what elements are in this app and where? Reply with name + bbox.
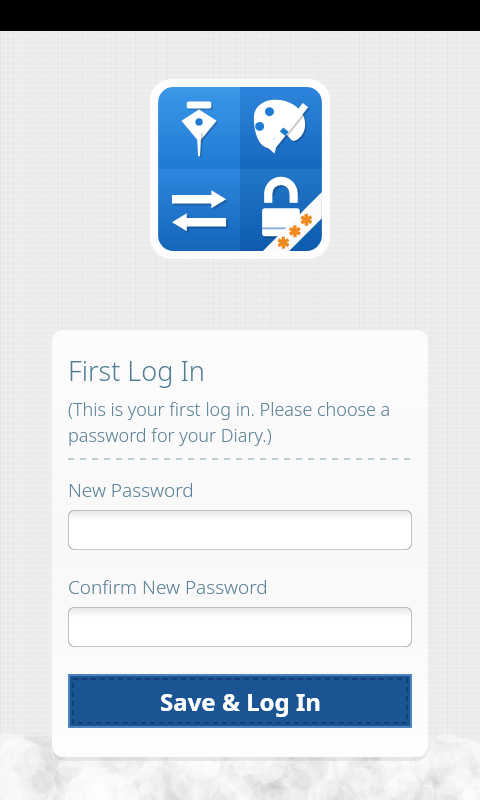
button[interactable] xyxy=(68,607,412,647)
staticText: (This is your first log in. Please choos… xyxy=(68,397,391,448)
staticText: First Log In xyxy=(68,352,205,389)
button[interactable]: Save & Log In xyxy=(68,674,412,728)
staticText: Save & Log In xyxy=(160,685,321,718)
staticText: Confirm New Password xyxy=(68,574,268,600)
button[interactable] xyxy=(68,510,412,550)
other: Diary app icon xyxy=(150,79,330,259)
staticText: New Password xyxy=(68,477,194,503)
